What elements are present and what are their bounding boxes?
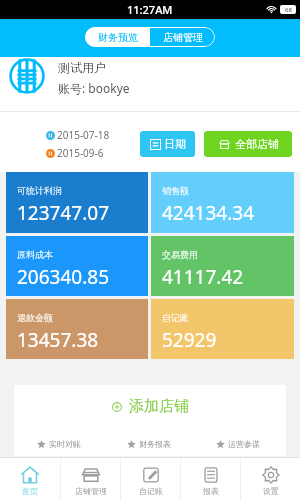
button[interactable]: 店铺管理 xyxy=(150,27,215,47)
staticText: 添加店铺 xyxy=(129,397,189,416)
staticText: 店铺管理 xyxy=(163,31,203,44)
button[interactable]: 可统计利润 xyxy=(6,172,148,233)
button[interactable]: 添加店铺 xyxy=(14,385,286,432)
staticText: 日期 xyxy=(164,137,186,151)
staticText: 财务预览 xyxy=(98,31,138,44)
button[interactable]: 自记账 xyxy=(151,299,294,359)
staticText: 13457.38 xyxy=(17,327,99,353)
button[interactable]: 首页 xyxy=(0,458,60,500)
button[interactable]: 店铺管理 xyxy=(61,458,120,500)
staticText: 交易费用 xyxy=(162,249,198,260)
staticText: 可统计利润 xyxy=(17,185,62,196)
button[interactable]: 财务报表 xyxy=(127,439,171,449)
staticText: 11:27AM xyxy=(127,2,173,17)
staticText: 财务报表 xyxy=(139,439,171,449)
button[interactable]: 报表 xyxy=(181,458,240,500)
button[interactable]: 销售额 xyxy=(151,172,294,233)
button[interactable]: 设置 xyxy=(241,458,300,500)
staticText: 自记账 xyxy=(139,486,163,496)
button[interactable]: 自记账 xyxy=(121,458,180,500)
staticText: 自记账 xyxy=(162,312,189,323)
staticText: 123747.07 xyxy=(17,200,110,226)
staticText: 销售额 xyxy=(162,185,189,196)
staticText: 测试用户 xyxy=(58,60,106,75)
staticText: 424134.34 xyxy=(162,200,255,226)
staticText: 全部店铺 xyxy=(235,137,279,151)
button[interactable]: 日期 xyxy=(140,131,195,157)
button[interactable]: 实时对账 xyxy=(37,439,81,449)
staticText: 68 xyxy=(285,6,292,14)
staticText: 实时对账 xyxy=(49,439,81,449)
staticText: 账号: bookye xyxy=(58,80,130,96)
staticText: 2015-07-18 xyxy=(57,128,110,142)
staticText: 设置 xyxy=(263,486,279,496)
button[interactable]: 交易费用 xyxy=(151,236,294,296)
staticText: 店铺管理 xyxy=(75,486,107,496)
staticText: 52929 xyxy=(162,327,217,353)
button[interactable]: 原料成本 xyxy=(6,236,148,296)
staticText: 首页 xyxy=(22,486,38,496)
button[interactable]: 运营参谋 xyxy=(216,439,260,449)
staticText: 206340.85 xyxy=(17,264,110,290)
button[interactable]: 财务预览 xyxy=(85,27,150,47)
staticText: 运营参谋 xyxy=(228,439,260,449)
staticText: 2015-09-6 xyxy=(57,146,104,160)
staticText: 报表 xyxy=(203,486,219,496)
button[interactable]: 全部店铺 xyxy=(204,131,292,157)
staticText: 原料成本 xyxy=(17,249,53,260)
staticText: 退款金额 xyxy=(17,312,53,323)
staticText: 41117.42 xyxy=(162,264,244,290)
button[interactable]: 退款金额 xyxy=(6,299,148,359)
